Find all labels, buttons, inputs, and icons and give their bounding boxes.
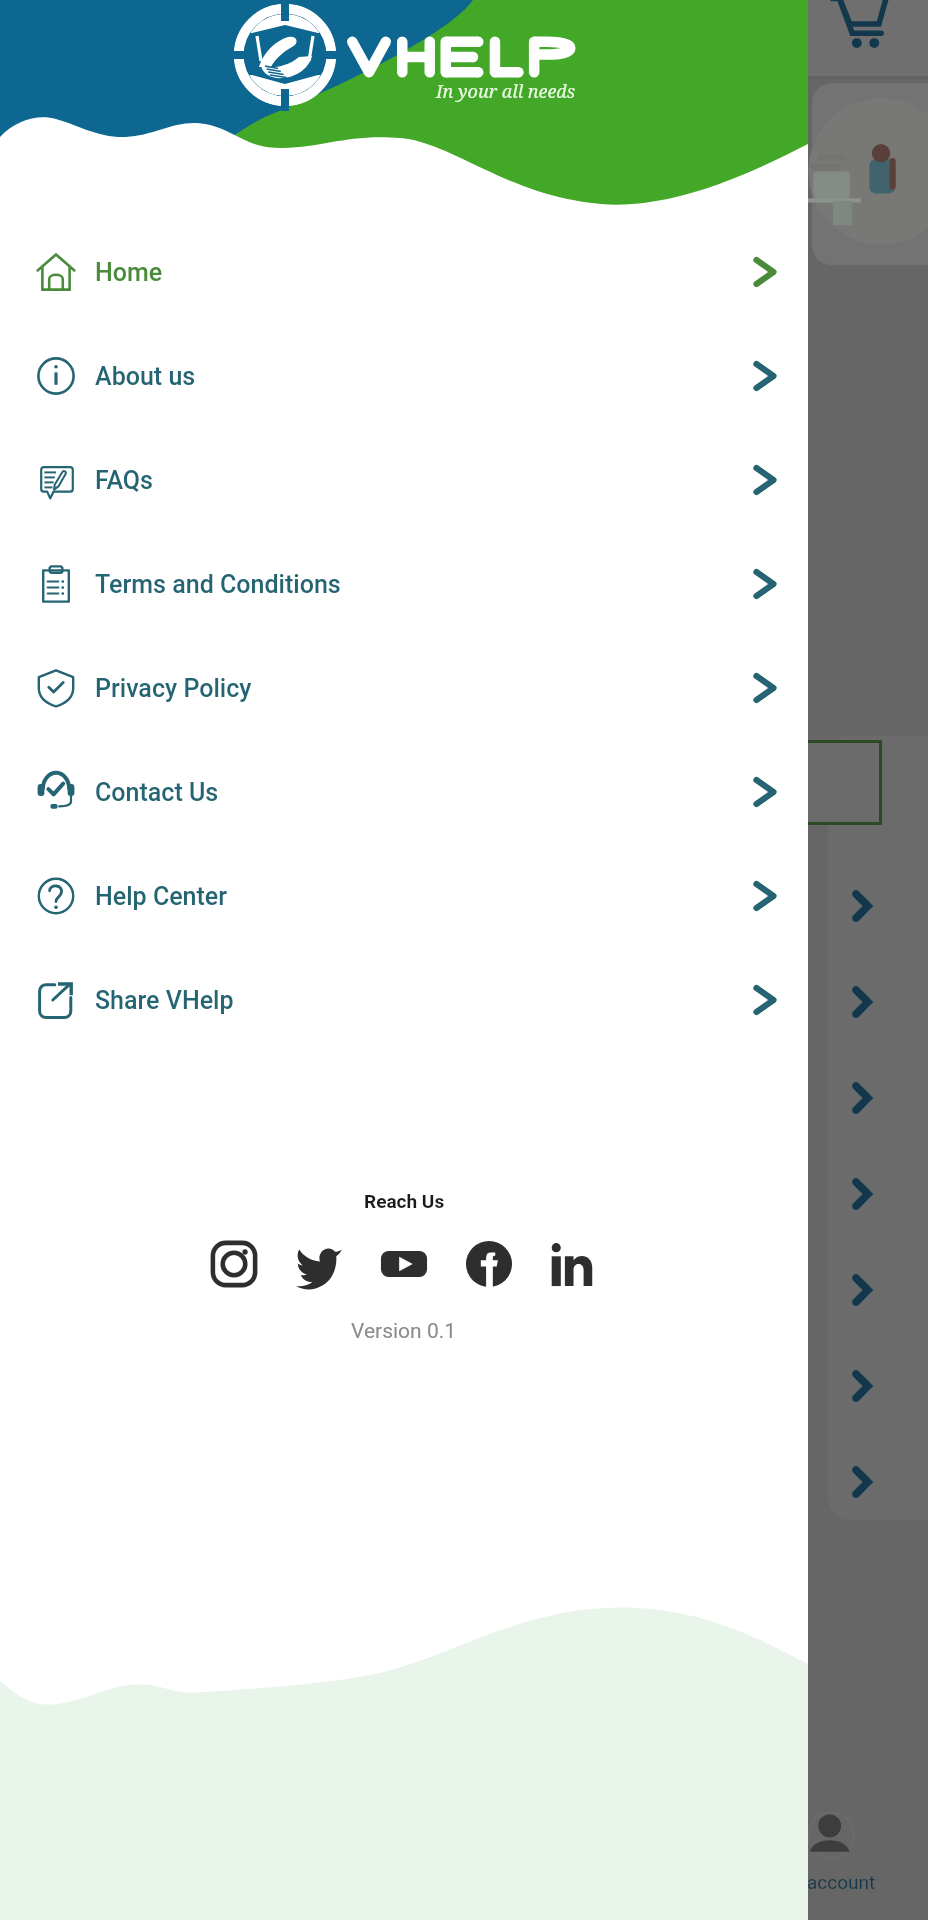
staticText: Reach Us <box>364 1190 445 1212</box>
staticText: Version 0.1 <box>351 1319 457 1344</box>
staticText: About us <box>95 362 196 391</box>
button[interactable]: Facebook <box>465 1240 513 1288</box>
button[interactable]: Help Center <box>0 844 808 948</box>
staticText: In your all needs <box>436 79 576 104</box>
button[interactable]: LinkedIn <box>550 1240 598 1288</box>
staticText: account <box>807 1871 876 1893</box>
button[interactable]: YouTube <box>380 1240 428 1288</box>
staticText: Privacy Policy <box>95 674 252 703</box>
button[interactable]: Terms and Conditions <box>0 532 808 636</box>
staticText: Terms and Conditions <box>95 570 341 599</box>
button[interactable]: FAQs <box>0 428 808 532</box>
staticText: Contact Us <box>95 778 219 807</box>
button[interactable]: Contact Us <box>0 740 808 844</box>
button[interactable]: Share VHelp <box>0 948 808 1052</box>
button[interactable]: About us <box>0 324 808 428</box>
button[interactable]: Instagram <box>210 1240 258 1288</box>
staticText: FAQs <box>95 466 153 495</box>
button[interactable]: Twitter <box>295 1240 343 1288</box>
button[interactable]: Privacy Policy <box>0 636 808 740</box>
button[interactable]: Home <box>0 220 808 324</box>
staticText: Share VHelp <box>95 986 234 1015</box>
staticText: Help Center <box>95 882 228 911</box>
staticText: Home <box>95 258 163 287</box>
